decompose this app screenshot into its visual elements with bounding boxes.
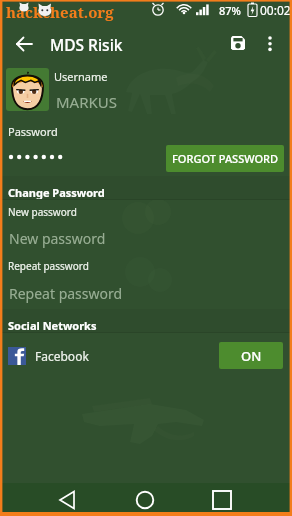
staticText: MDS Risik	[50, 34, 123, 55]
button[interactable]: ON	[219, 342, 283, 369]
staticText: hackcheat.org	[6, 2, 114, 22]
staticText: Social Networks	[8, 318, 97, 333]
button[interactable]: Save	[228, 30, 254, 56]
button[interactable]: More options	[258, 30, 284, 56]
staticText: 00:02	[260, 2, 291, 18]
button[interactable]: Home	[131, 486, 159, 514]
button[interactable]: Back	[12, 31, 38, 57]
staticText: Change Password	[8, 185, 105, 200]
staticText: 87%	[219, 3, 241, 18]
staticText: New password	[8, 205, 77, 219]
staticText: FORGOT PASSWORD	[172, 151, 279, 166]
staticText: New password	[9, 229, 106, 248]
button[interactable]: Recents	[208, 486, 236, 514]
staticText: ON	[241, 347, 262, 365]
staticText: MARKUS	[56, 92, 118, 112]
button[interactable]: Back	[55, 486, 83, 514]
staticText: Repeat password	[9, 284, 123, 303]
button[interactable]: FORGOT PASSWORD	[166, 145, 284, 172]
staticText: Facebook	[35, 348, 89, 364]
staticText: Username	[54, 69, 108, 84]
staticText: Repeat password	[8, 259, 89, 273]
staticText: Password	[8, 124, 58, 139]
